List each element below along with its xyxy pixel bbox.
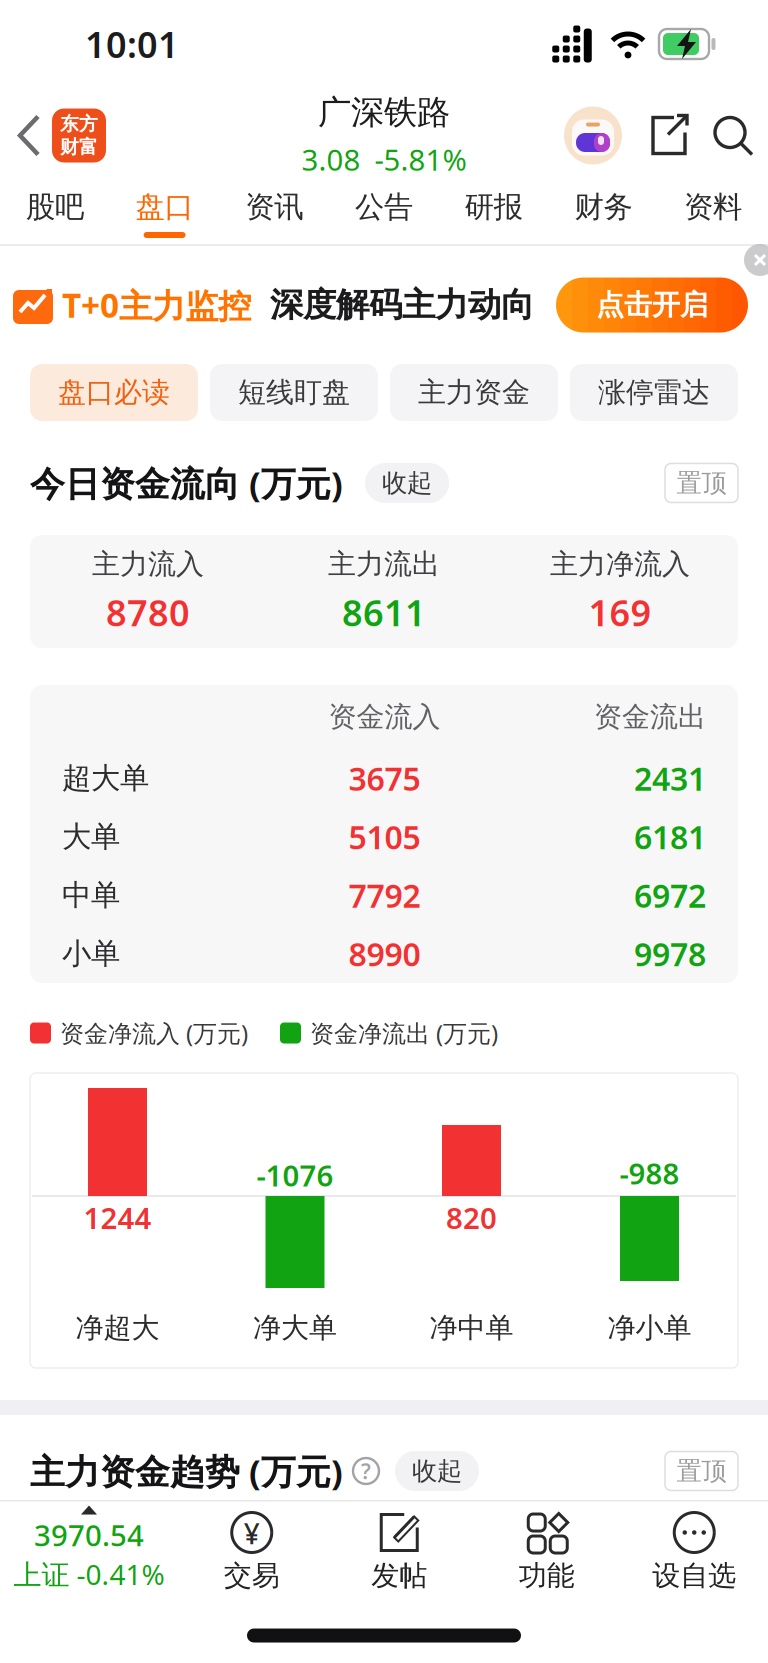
staticText: 深度解码主力动向 <box>270 284 534 325</box>
staticText: 点击开启 <box>596 288 708 322</box>
button[interactable]: 发帖 <box>325 1502 473 1610</box>
staticText: 1244 <box>83 1198 151 1237</box>
staticText: 主力资金 <box>418 375 530 410</box>
button[interactable]: 置顶 <box>665 1451 738 1490</box>
button[interactable]: 公告 <box>329 183 439 244</box>
staticText: 交易 <box>224 1558 280 1593</box>
staticText: 上证 -0.41% <box>13 1555 164 1593</box>
staticText: 今日资金流向 (万元) <box>30 460 343 506</box>
staticText: 短线盯盘 <box>238 375 350 410</box>
staticText: 广深铁路 <box>318 92 450 133</box>
staticText: 8611 <box>342 588 426 636</box>
staticText: 主力资金趋势 (万元) <box>30 1448 343 1494</box>
staticText: 大单 <box>62 819 120 855</box>
staticText: 财富 <box>60 135 98 158</box>
staticText: 资金净流入 (万元) <box>60 1017 248 1049</box>
staticText: -5.81% <box>374 140 466 179</box>
staticText: 7792 <box>348 874 420 916</box>
staticText: 主力流出 <box>328 547 440 581</box>
staticText: 财务 <box>574 189 632 225</box>
button[interactable]: 搜索 <box>690 112 768 158</box>
button[interactable]: 收起 <box>365 463 449 503</box>
staticText: -988 <box>619 1153 679 1192</box>
staticText: 中单 <box>62 877 120 913</box>
staticText: 置顶 <box>676 1455 726 1486</box>
staticText: 3.08 <box>301 140 360 179</box>
button[interactable]: 研报 <box>439 183 548 244</box>
staticText: 收起 <box>382 467 432 498</box>
staticText: 置顶 <box>676 467 726 498</box>
button[interactable]: 设自选 <box>620 1502 768 1610</box>
button[interactable]: 上证指数 <box>0 1502 178 1610</box>
staticText: 东方 <box>60 113 98 135</box>
button[interactable]: 涨停雷达 <box>570 364 738 421</box>
button[interactable]: 点击开启 <box>556 277 768 332</box>
staticText: 8780 <box>106 588 190 636</box>
button[interactable]: 股吧 <box>0 183 110 244</box>
staticText: 820 <box>446 1198 497 1237</box>
staticText: 169 <box>588 588 651 636</box>
button[interactable]: 功能 <box>473 1502 620 1610</box>
staticText: 9978 <box>634 932 706 975</box>
staticText: T+0主力监控 <box>62 283 251 327</box>
staticText: 6972 <box>634 874 706 916</box>
button[interactable]: 资讯 <box>219 183 329 244</box>
staticText: -1076 <box>256 1155 333 1194</box>
button[interactable]: 主力资金 <box>390 364 558 421</box>
button[interactable]: 返回 <box>0 114 42 156</box>
button[interactable]: 盘口必读 <box>30 364 198 421</box>
staticText: 资金流出 <box>594 700 706 734</box>
staticText: 小单 <box>62 936 120 972</box>
staticText: 净超大 <box>75 1311 159 1345</box>
button[interactable]: 置顶 <box>665 463 738 502</box>
staticText: 研报 <box>465 189 523 225</box>
staticText: 主力净流入 <box>550 547 690 581</box>
staticText: 收起 <box>412 1455 462 1486</box>
staticText: 5105 <box>348 815 420 858</box>
staticText: 发帖 <box>371 1558 427 1593</box>
staticText: 6181 <box>634 815 706 858</box>
staticText: 10:01 <box>85 20 179 68</box>
button[interactable]: 财务 <box>548 183 658 244</box>
staticText: 资金流入 <box>328 700 440 734</box>
staticText: ? <box>361 1457 371 1485</box>
button[interactable]: 智能助手 <box>564 106 622 164</box>
staticText: 资讯 <box>245 189 303 225</box>
button[interactable]: 收起 <box>395 1451 479 1491</box>
staticText: 3970.54 <box>34 1515 144 1554</box>
button[interactable]: 盘口 <box>110 183 219 244</box>
staticText: 盘口 <box>136 189 194 225</box>
staticText: 功能 <box>519 1558 575 1593</box>
staticText: 2431 <box>634 757 706 799</box>
staticText: 净中单 <box>429 1311 513 1345</box>
button[interactable]: 资料 <box>658 183 768 244</box>
button[interactable]: 分享 <box>622 112 690 158</box>
staticText: 设自选 <box>652 1558 736 1593</box>
staticText: 公告 <box>355 189 413 225</box>
staticText: 资金净流出 (万元) <box>310 1017 498 1049</box>
button[interactable]: 东方财富 <box>42 108 106 162</box>
staticText: 8990 <box>348 932 420 975</box>
button[interactable]: ¥ <box>178 1502 325 1610</box>
button[interactable]: 关闭 <box>736 246 768 278</box>
staticText: 净小单 <box>607 1311 691 1345</box>
button[interactable]: 短线盯盘 <box>210 364 378 421</box>
staticText: ¥ <box>244 1515 260 1552</box>
staticText: 资料 <box>684 189 742 225</box>
staticText: 净大单 <box>253 1311 337 1345</box>
staticText: 涨停雷达 <box>598 375 710 410</box>
staticText: 盘口必读 <box>58 375 170 410</box>
staticText: 3675 <box>348 757 420 799</box>
staticText: 股吧 <box>26 189 84 225</box>
staticText: 超大单 <box>62 760 149 796</box>
staticText: 主力流入 <box>92 547 204 581</box>
